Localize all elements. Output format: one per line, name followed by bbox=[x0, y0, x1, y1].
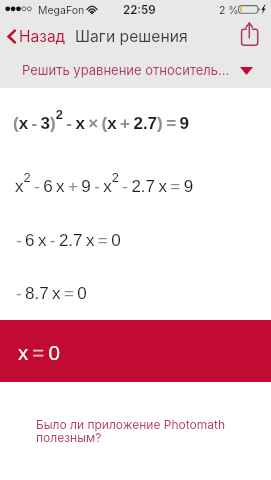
staticText: (x - 3)2 - x × (x + 2.7) = 9 bbox=[13, 107, 189, 133]
staticText: x = 0 bbox=[18, 341, 60, 364]
staticText: MegaFon bbox=[38, 4, 85, 17]
staticText: Решить уравнение относитель... bbox=[22, 62, 230, 78]
staticText: - 8.7 x = 0 bbox=[16, 284, 87, 303]
staticText: x2 - 6 x + 9 - x2 - 2.7 x = 9 bbox=[15, 170, 194, 196]
button[interactable]: Решить уравнение относитель... bbox=[0, 52, 271, 88]
button[interactable]: Назад bbox=[4, 22, 72, 50]
staticText: Шаги решения bbox=[75, 27, 188, 46]
staticText: Назад bbox=[19, 27, 66, 46]
staticText: Было ли приложение Photomath полезным? bbox=[36, 417, 225, 445]
staticText: 22:59 bbox=[123, 3, 156, 17]
staticText: 2 % bbox=[219, 4, 239, 17]
staticText: - 6 x - 2.7 x = 0 bbox=[16, 231, 121, 250]
button[interactable]: x = 0 bbox=[0, 320, 271, 382]
button[interactable]: Share bbox=[240, 20, 264, 48]
